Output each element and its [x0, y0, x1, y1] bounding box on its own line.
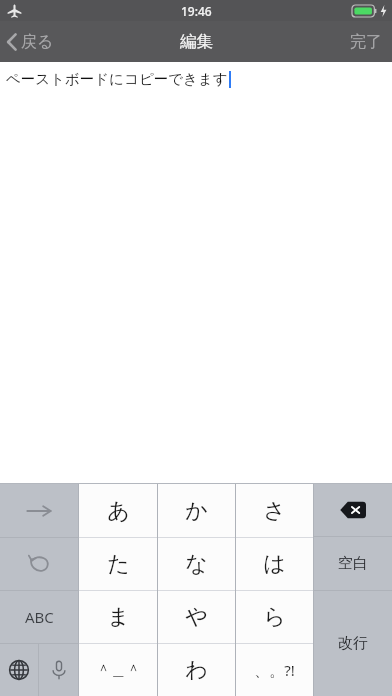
- button[interactable]: ま: [79, 591, 157, 643]
- button[interactable]: 、。?!: [236, 644, 313, 696]
- staticText: ま: [107, 603, 130, 631]
- button[interactable]: ペーストボードにコピーできます: [6, 70, 392, 88]
- staticText: は: [263, 550, 286, 578]
- staticText: な: [185, 550, 208, 578]
- button[interactable]: ら: [236, 591, 313, 643]
- staticText: さ: [263, 497, 286, 525]
- button[interactable]: さ: [236, 484, 313, 537]
- staticText: や: [185, 603, 208, 631]
- button[interactable]: た: [79, 538, 157, 590]
- staticText: た: [107, 550, 130, 578]
- button[interactable]: は: [236, 538, 313, 590]
- button[interactable]: や: [158, 591, 235, 643]
- button[interactable]: ＾＿＾: [79, 644, 157, 696]
- staticText: 19:46: [181, 3, 212, 19]
- staticText: 、。?!: [254, 660, 295, 680]
- staticText: ら: [263, 603, 286, 631]
- button[interactable]: 改行: [314, 591, 392, 696]
- button[interactable]: わ: [158, 644, 235, 696]
- button[interactable]: 完了: [340, 21, 392, 62]
- button[interactable]: な: [158, 538, 235, 590]
- button[interactable]: 空白: [314, 537, 392, 590]
- button[interactable]: か: [158, 484, 235, 537]
- staticText: 改行: [338, 634, 368, 653]
- button[interactable]: Undo: [0, 538, 78, 590]
- staticText: ABC: [25, 607, 54, 627]
- staticText: 戻る: [21, 32, 54, 52]
- button[interactable]: ABC: [0, 591, 78, 643]
- button[interactable]: 戻る: [0, 21, 64, 62]
- staticText: か: [185, 497, 208, 525]
- staticText: 完了: [350, 32, 382, 52]
- staticText: あ: [107, 497, 130, 525]
- button[interactable]: Switch keyboard: [0, 644, 38, 696]
- button[interactable]: Dictation: [39, 644, 78, 696]
- button[interactable]: Delete: [314, 484, 392, 536]
- staticText: わ: [185, 656, 208, 684]
- staticText: 編集: [180, 31, 213, 52]
- staticText: ペーストボードにコピーできます: [6, 70, 228, 88]
- staticText: 空白: [338, 554, 368, 573]
- staticText: ＾＿＾: [96, 661, 141, 680]
- button[interactable]: Next candidate: [0, 484, 78, 537]
- button[interactable]: あ: [79, 484, 157, 537]
